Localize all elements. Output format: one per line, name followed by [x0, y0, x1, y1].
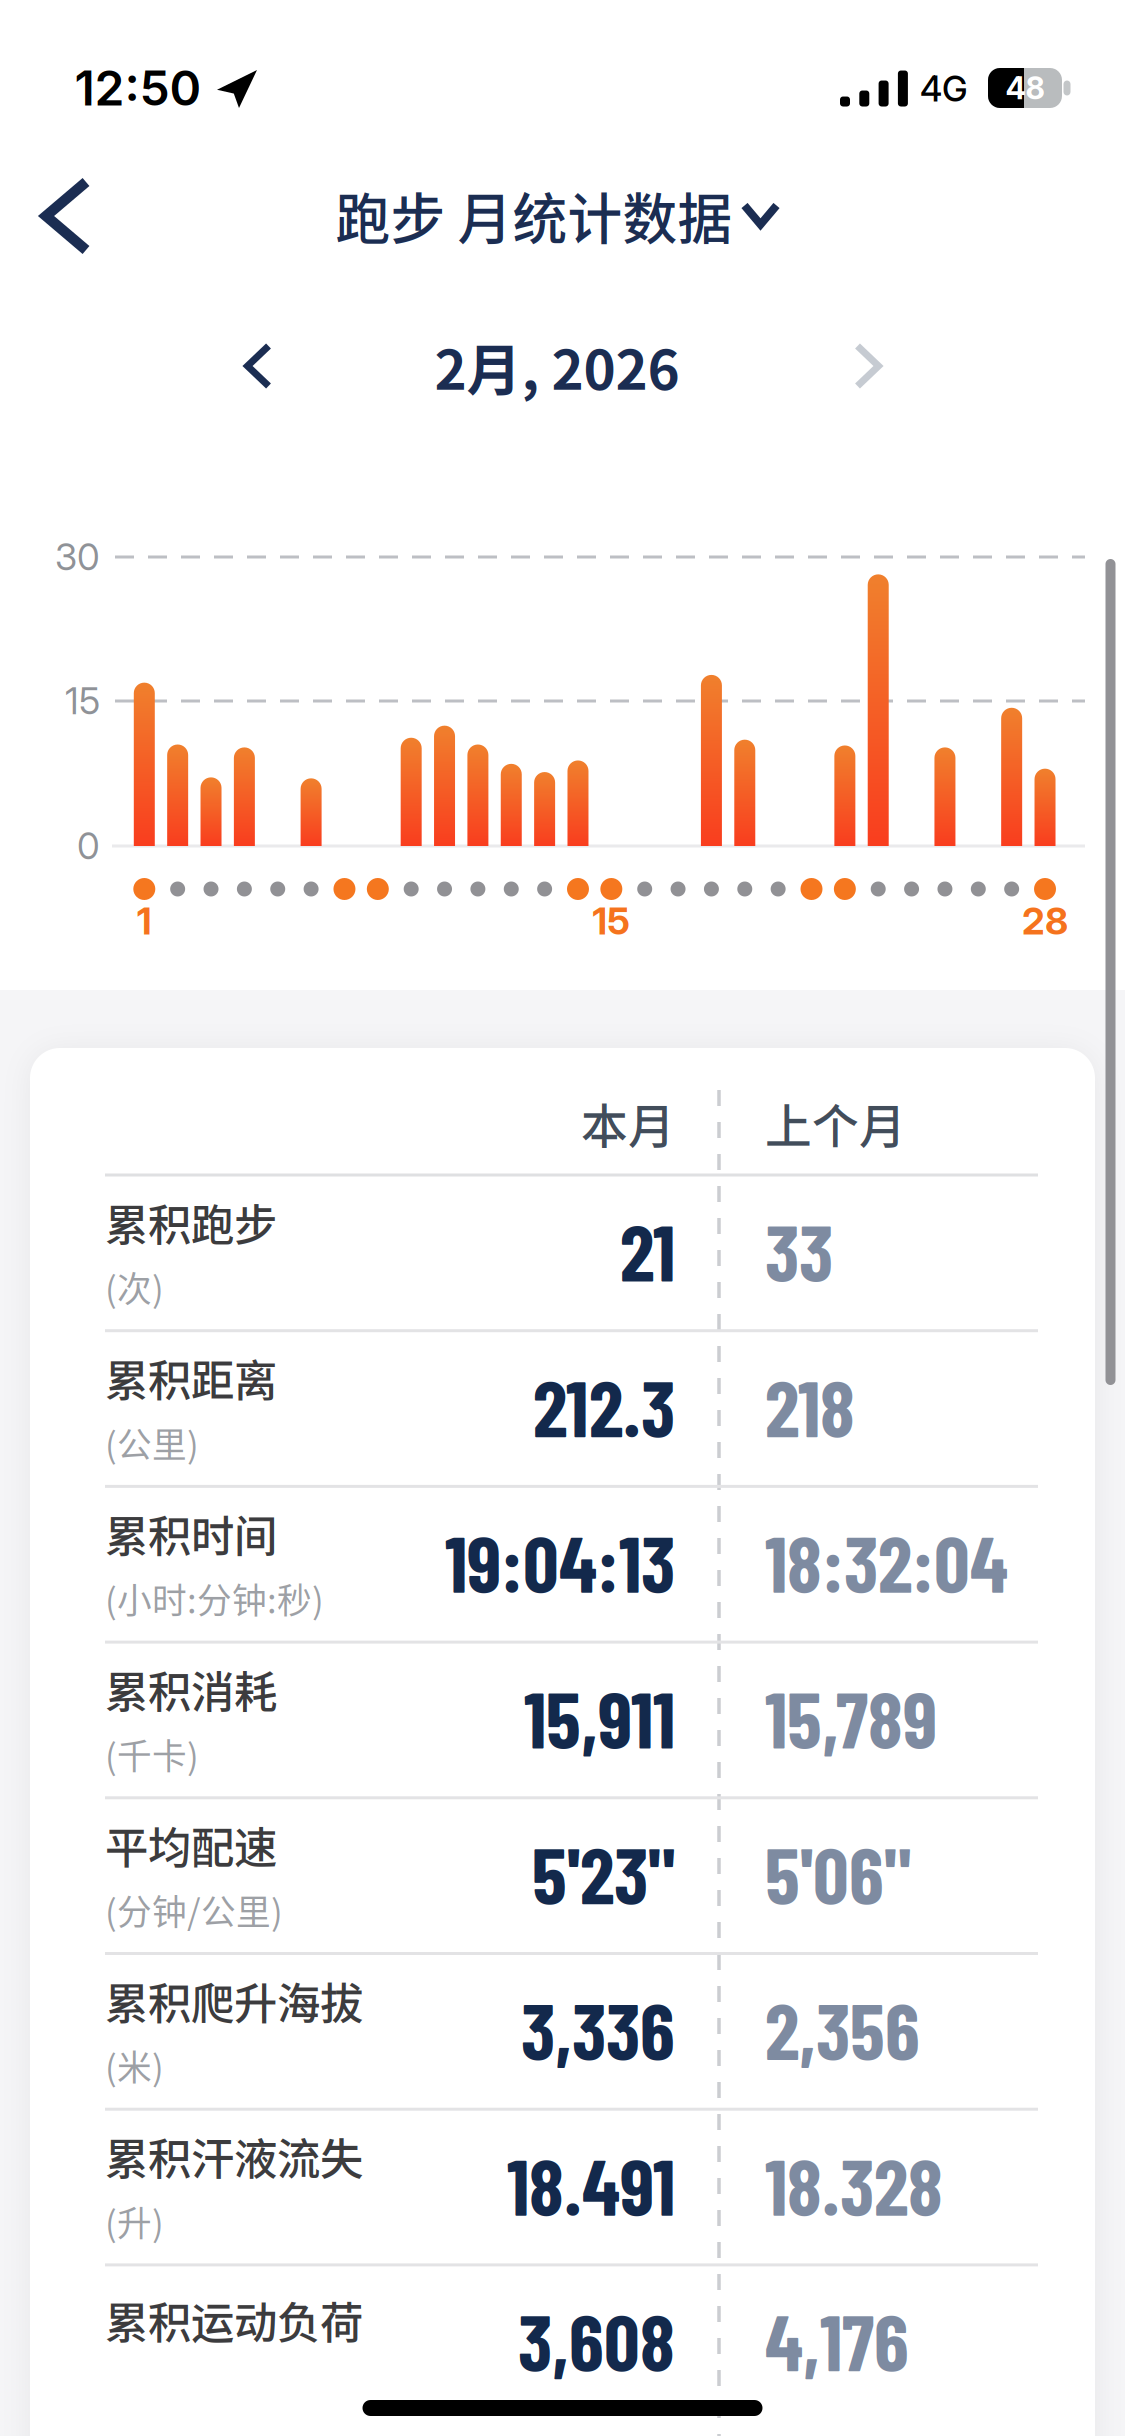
- staticText: 218: [765, 1358, 855, 1453]
- staticText: 平均配速: [105, 1813, 277, 1876]
- staticText: 累积汗液流失: [105, 2125, 363, 2187]
- staticText: 4G: [920, 68, 968, 110]
- staticText: 12:50: [74, 59, 201, 117]
- staticText: 15,911: [524, 1670, 675, 1764]
- staticText: 3,336: [521, 1981, 675, 2076]
- staticText: 15: [65, 679, 100, 723]
- staticText: 28: [1022, 898, 1068, 944]
- staticText: 上个月: [765, 1089, 906, 1157]
- staticText: (小时:分钟:秒): [105, 1573, 324, 1623]
- staticText: 累积时间: [105, 1502, 277, 1565]
- button[interactable]: 跑步 月统计数据: [335, 175, 776, 255]
- button[interactable]: Previous month: [229, 328, 286, 404]
- staticText: 15: [592, 898, 630, 944]
- staticText: 48: [1005, 69, 1044, 106]
- staticText: 18:32:04: [765, 1514, 1008, 1609]
- staticText: (米): [105, 2040, 164, 2091]
- staticText: 5'06": [765, 1826, 911, 1920]
- staticText: (升): [105, 2196, 164, 2246]
- staticText: 30: [55, 535, 100, 579]
- staticText: 15,789: [765, 1670, 937, 1764]
- staticText: 累积跑步: [105, 1191, 277, 1253]
- staticText: 18.491: [507, 2137, 675, 2231]
- staticText: 4,176: [765, 2293, 909, 2387]
- staticText: 19:04:13: [445, 1514, 675, 1609]
- staticText: 33: [765, 1203, 833, 1297]
- staticText: 本月: [581, 1089, 675, 1157]
- staticText: 1: [137, 898, 152, 944]
- button[interactable]: Next month: [839, 328, 896, 404]
- staticText: 跑步 月统计数据: [335, 175, 732, 255]
- staticText: 累积距离: [105, 1346, 277, 1409]
- staticText: 2月, 2026: [434, 326, 679, 406]
- staticText: 3,608: [518, 2293, 675, 2387]
- staticText: 2,356: [765, 1981, 920, 2076]
- staticText: (分钟/公里): [105, 1885, 283, 1935]
- staticText: 5'23": [532, 1826, 675, 1920]
- staticText: 累积爬升海拔: [105, 1969, 363, 2032]
- staticText: (公里): [105, 1418, 199, 1468]
- staticText: (千卡): [105, 1729, 199, 1779]
- staticText: 212.3: [533, 1358, 675, 1453]
- staticText: 18.328: [765, 2137, 943, 2231]
- staticText: 累积运动负荷: [105, 2288, 363, 2351]
- staticText: (次): [105, 1262, 164, 1312]
- staticText: 累积消耗: [105, 1658, 277, 1720]
- button[interactable]: Back: [24, 160, 108, 272]
- staticText: 21: [620, 1203, 675, 1297]
- staticText: 0: [77, 824, 100, 868]
